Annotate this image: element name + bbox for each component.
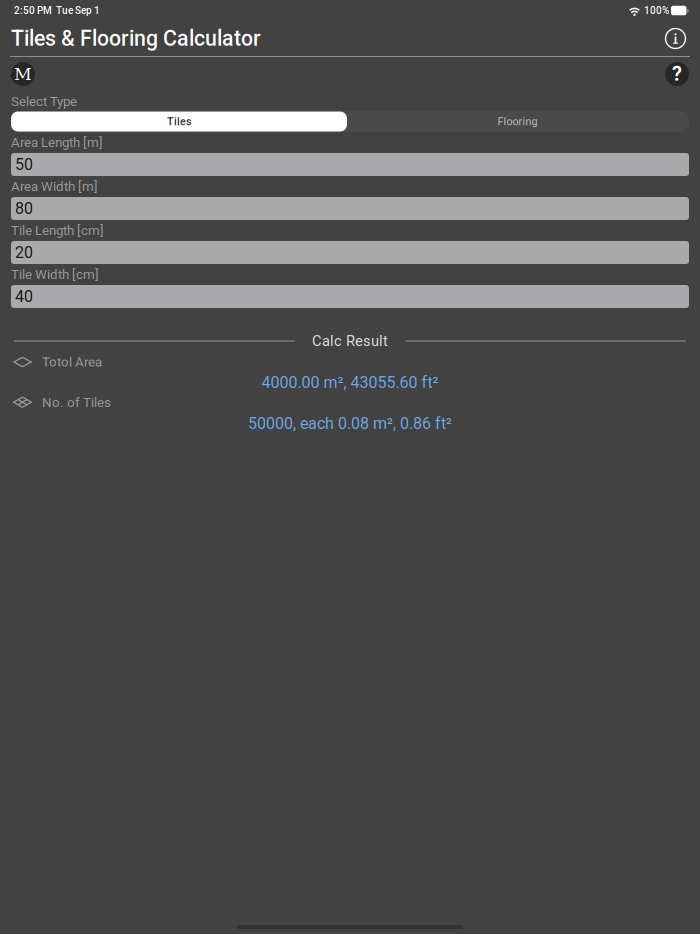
- button[interactable]: 80: [11, 197, 689, 220]
- button[interactable]: 20: [11, 241, 689, 264]
- staticText: 100%: [642, 5, 671, 16]
- staticText: Area Width [m]: [11, 179, 98, 194]
- staticText: Calc Result: [312, 332, 388, 350]
- staticText: 40: [15, 287, 33, 306]
- staticText: 4000.00 m², 43055.60 ft²: [261, 373, 438, 392]
- staticText: M: [14, 64, 32, 84]
- button[interactable]: Info: [662, 25, 689, 52]
- staticText: 20: [15, 243, 33, 262]
- staticText: 80: [15, 199, 33, 218]
- staticText: 50000, each 0.08 m², 0.86 ft²: [248, 414, 452, 433]
- staticText: Select Type: [11, 94, 77, 109]
- staticText: No. of Tiles: [42, 395, 111, 410]
- button[interactable]: 50: [11, 153, 689, 176]
- button[interactable]: Account: [11, 62, 35, 86]
- staticText: Flooring: [497, 115, 537, 128]
- staticText: Tiles: [167, 115, 191, 128]
- button[interactable]: 40: [11, 285, 689, 308]
- button[interactable]: Help: [665, 62, 689, 86]
- staticText: Totol Area: [42, 354, 102, 370]
- staticText: Tile Length [cm]: [11, 223, 104, 238]
- staticText: Tiles & Flooring Calculator: [11, 26, 261, 51]
- button[interactable]: Flooring: [347, 111, 688, 131]
- staticText: Area Length [m]: [11, 135, 103, 150]
- button[interactable]: Tiles: [11, 111, 347, 131]
- staticText: 50: [15, 155, 33, 174]
- staticText: Tile Width [cm]: [11, 267, 99, 282]
- staticText: 2:50 PM: [14, 5, 52, 16]
- staticText: ?: [672, 62, 682, 86]
- staticText: Tue Sep 1: [52, 5, 100, 16]
